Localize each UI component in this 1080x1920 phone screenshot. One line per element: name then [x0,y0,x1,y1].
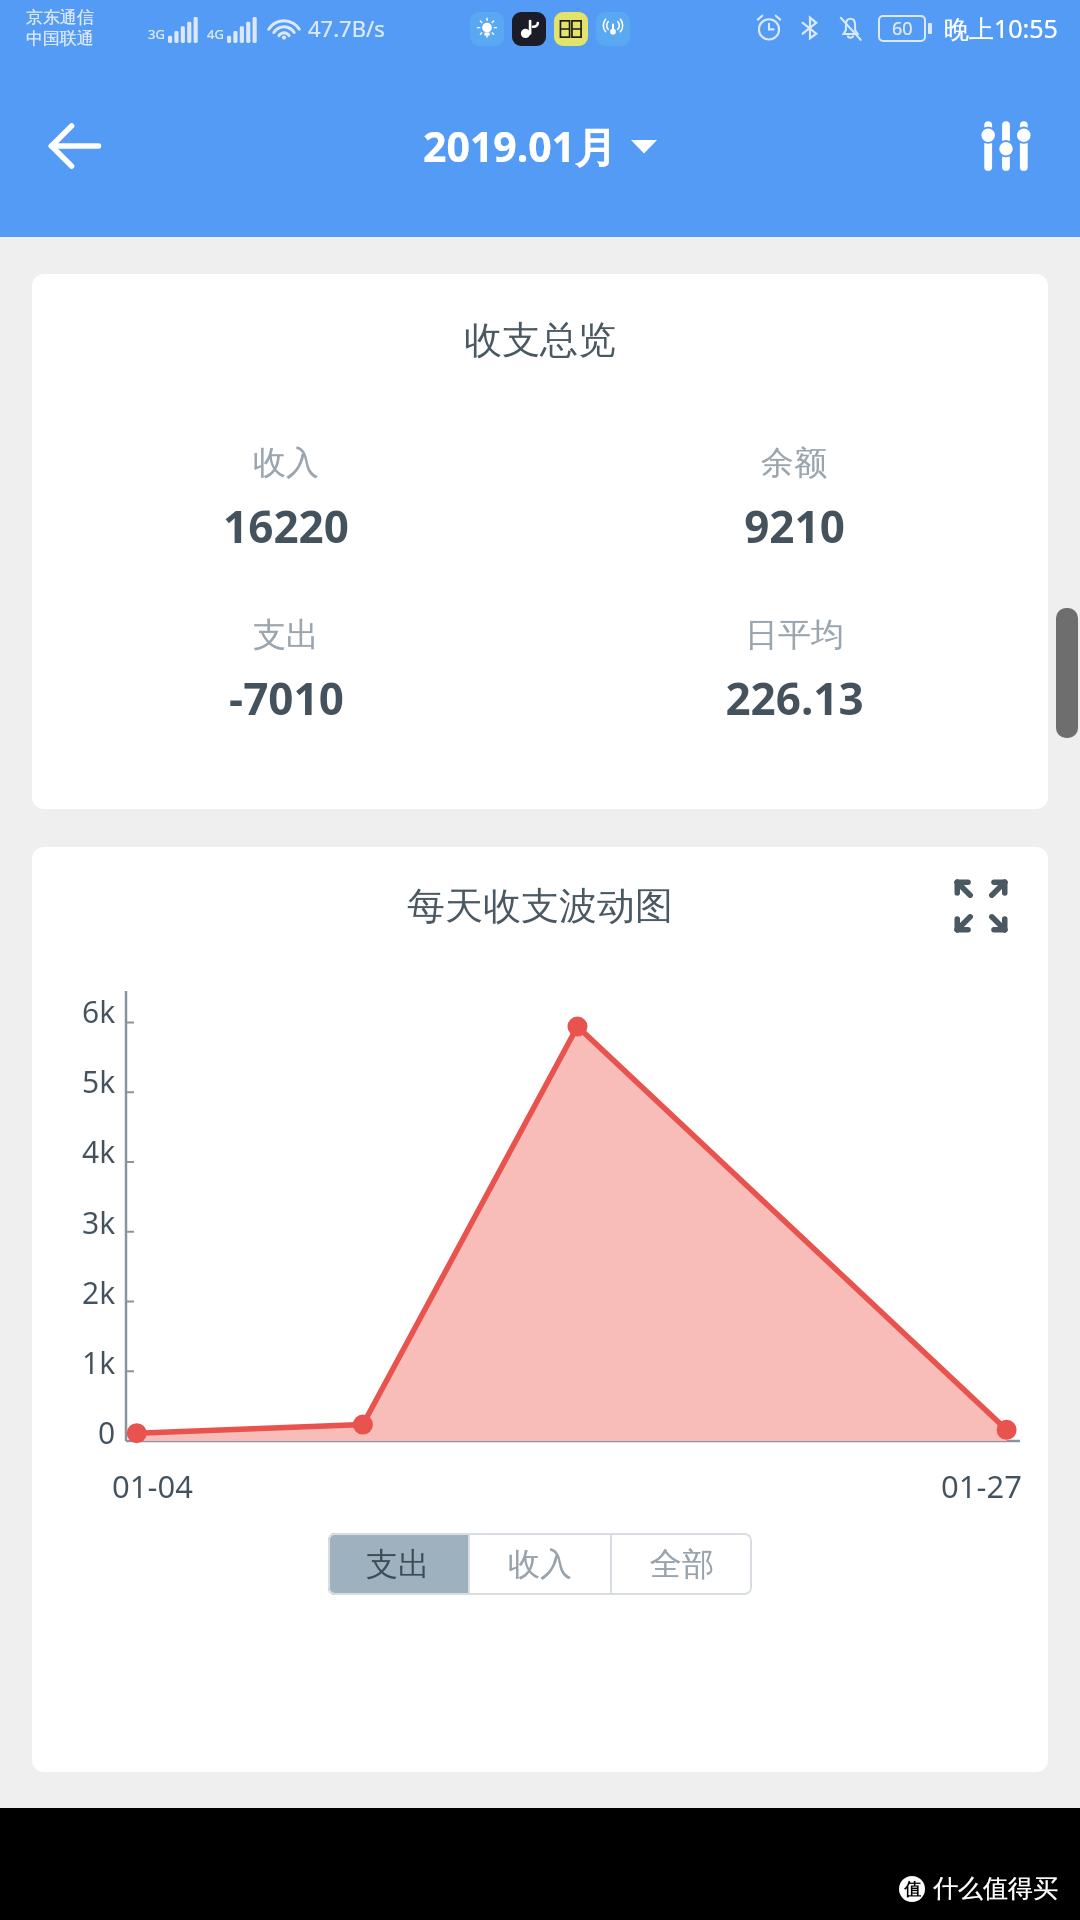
staticText: 16220 [223,496,349,556]
staticText: 226.13 [725,668,864,728]
staticText: 5k [82,1061,116,1102]
staticText: 4k [82,1131,116,1172]
button[interactable]: Expand chart [944,869,1018,943]
staticText: 1k [82,1342,116,1383]
staticText: 每天收支波动图 [407,882,673,930]
button[interactable]: 收入 [470,1533,610,1595]
staticText: 9210 [744,496,845,556]
button[interactable]: 支出 [328,1533,468,1595]
staticText: 47.7B/s [308,13,385,43]
staticText: 京东通信 [26,7,94,28]
staticText: 值 [904,1879,921,1900]
staticText: 01-04 [112,1465,193,1507]
staticText: 余额 [761,442,827,484]
staticText: 全部 [650,1544,714,1584]
staticText: 支出 [366,1544,430,1584]
button[interactable]: 全部 [612,1533,752,1595]
staticText: 60 [892,16,913,41]
button[interactable]: Filter [960,100,1052,192]
staticText: 晚上10:55 [944,11,1058,45]
staticText: 01-27 [941,1465,1022,1507]
staticText: 收入 [508,1544,572,1584]
staticText: 收入 [253,442,319,484]
staticText: 3k [82,1202,116,1243]
staticText: 3G [148,25,165,43]
staticText: 日平均 [745,614,844,656]
staticText: 收支总览 [464,316,616,364]
staticText: 0 [98,1412,116,1453]
staticText: -7010 [229,668,344,728]
staticText: 4G [207,25,224,43]
button[interactable]: 2019.01月 [423,118,657,174]
staticText: 2019.01月 [423,118,617,174]
staticText: 2k [82,1272,116,1313]
staticText: 支出 [253,614,319,656]
button[interactable]: 收支总览 [32,274,1048,809]
staticText: 什么值得买 [933,1873,1058,1904]
button[interactable]: Back [30,101,120,191]
staticText: 中国联通 [26,28,94,49]
staticText: 6k [82,991,116,1032]
